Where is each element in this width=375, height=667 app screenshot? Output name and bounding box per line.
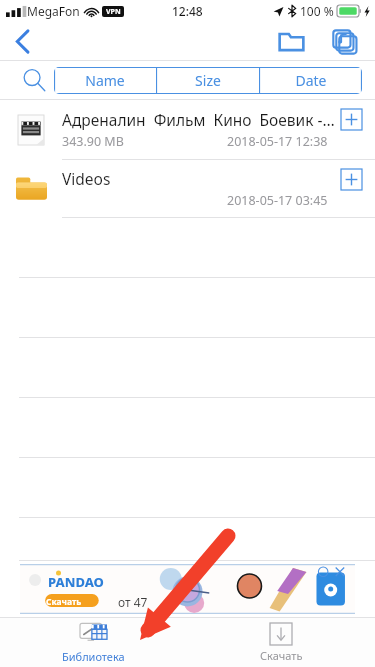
staticText: Адреналин Фильм Кино Боевик -… [62,109,335,130]
button[interactable]: Videos [0,160,375,218]
button[interactable]: Search [14,62,54,98]
button[interactable]: New folder [269,22,313,60]
button[interactable]: Back [0,22,44,60]
button[interactable]: Name [54,67,156,94]
button[interactable]: Адреналин Фильм Кино Боевик -… [0,100,375,160]
staticText: от 47 [118,594,148,610]
staticText: 12:48 [172,3,203,19]
staticText: MegaFon [27,3,80,19]
button[interactable]: Date [259,67,362,94]
button[interactable]: Size [156,67,259,94]
staticText: Скачать [46,596,82,608]
staticText: Библиотека [62,649,125,664]
staticText: Скачать [260,648,303,663]
staticText: 2018-05-17 12:38 [227,133,328,150]
staticText: PANDAO [48,573,104,591]
button[interactable]: Add [341,169,362,190]
staticText: 2018-05-17 03:45 [227,192,328,209]
staticText: Date [295,71,327,90]
staticText: 343.90 MB [62,133,124,150]
staticText: Size [195,71,221,90]
button[interactable]: Playlists [323,22,367,60]
staticText: VPN [106,7,121,17]
staticText: Name [85,71,125,90]
staticText: 100 % [300,3,334,19]
button[interactable]: Advertisement [20,564,355,614]
button[interactable]: Add [341,109,362,130]
button[interactable]: Библиотека [0,618,187,667]
button[interactable]: Скачать [187,618,375,667]
staticText: Videos [62,168,111,189]
